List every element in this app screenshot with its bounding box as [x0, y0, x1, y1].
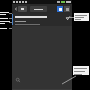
- button[interactable]: [0, 26, 12, 31]
- button[interactable]: Selected: [12, 13, 72, 26]
- button[interactable]: Selected: [65, 15, 70, 20]
- button[interactable]: Search: [15, 77, 20, 82]
- button[interactable]: [74, 13, 89, 21]
- button[interactable]: Back: [14, 5, 17, 12]
- button[interactable]: [73, 66, 89, 75]
- button[interactable]: Archive: [18, 6, 27, 12]
- button[interactable]: Labels: [57, 6, 63, 12]
- button[interactable]: [30, 6, 47, 12]
- button[interactable]: [0, 11, 12, 16]
- button[interactable]: [0, 20, 12, 25]
- button[interactable]: [0, 16, 12, 21]
- button[interactable]: More options: [64, 6, 70, 12]
